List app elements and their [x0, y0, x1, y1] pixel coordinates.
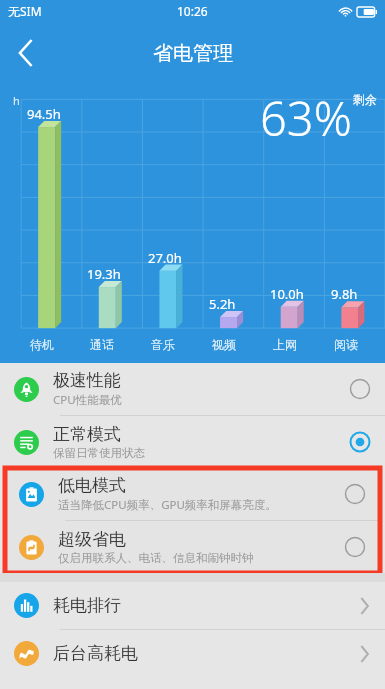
staticText: 10.0h: [270, 285, 304, 303]
staticText: h: [13, 93, 20, 108]
staticText: 剩余: [353, 92, 377, 107]
button[interactable]: Back: [0, 27, 52, 79]
staticText: 94.5h: [27, 105, 61, 123]
staticText: 正常模式: [53, 424, 121, 445]
button[interactable]: 后台高耗电: [0, 630, 385, 677]
staticText: 极速性能: [53, 370, 121, 391]
staticText: 27.0h: [148, 249, 182, 267]
staticText: 低电模式: [58, 475, 126, 496]
button[interactable]: 低电模式: [5, 468, 380, 520]
staticText: 5.2h: [209, 295, 236, 313]
staticText: 无SIM: [8, 3, 42, 19]
staticText: 上网: [273, 337, 297, 352]
staticText: 阅读: [334, 337, 358, 352]
staticText: 通话: [90, 337, 114, 352]
staticText: 省电管理: [153, 41, 233, 66]
button[interactable]: 极速性能: [0, 363, 385, 415]
button[interactable]: 耗电排行: [0, 582, 385, 629]
staticText: 待机: [30, 337, 54, 352]
staticText: 仅启用联系人、电话、信息和闹钟时钟: [58, 551, 254, 565]
staticText: CPU性能最优: [53, 392, 122, 408]
staticText: 视频: [212, 337, 236, 352]
staticText: 超级省电: [58, 529, 126, 550]
staticText: 保留日常使用状态: [53, 446, 145, 460]
button[interactable]: 超级省电: [5, 521, 380, 573]
button[interactable]: 正常模式: [0, 416, 385, 468]
staticText: 9.8h: [331, 285, 358, 303]
staticText: 耗电排行: [53, 595, 360, 616]
staticText: 适当降低CPU频率、GPU频率和屏幕亮度。: [58, 497, 277, 513]
staticText: 音乐: [151, 337, 175, 352]
staticText: 后台高耗电: [53, 643, 360, 664]
staticText: 19.3h: [87, 265, 121, 283]
staticText: 10:26: [177, 3, 208, 19]
staticText: 63%: [260, 86, 352, 150]
